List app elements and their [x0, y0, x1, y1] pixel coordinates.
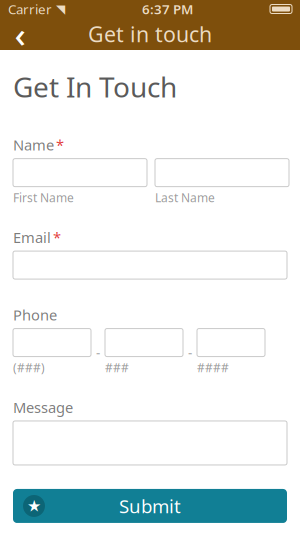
- staticText: Name: [13, 135, 54, 155]
- staticText: Carrier: [8, 0, 52, 18]
- staticText: Phone: [13, 305, 57, 325]
- button[interactable]: Back: [0, 18, 40, 50]
- staticText: First Name: [13, 190, 74, 206]
- button[interactable]: Submit: [13, 489, 287, 523]
- staticText: Get in touch: [88, 20, 212, 48]
- staticText: ####: [197, 360, 229, 375]
- staticText: ‹: [14, 11, 25, 57]
- staticText: Message: [13, 397, 73, 417]
- staticText: -: [188, 343, 192, 361]
- staticText: -: [96, 343, 100, 361]
- staticText: ★: [27, 497, 41, 515]
- staticText: (###): [13, 360, 45, 375]
- staticText: *: [53, 228, 61, 247]
- staticText: Email: [13, 228, 51, 247]
- staticText: 6:37 PM: [142, 0, 193, 18]
- staticText: Get In Touch: [13, 68, 177, 105]
- staticText: ◥: [52, 2, 65, 16]
- staticText: Last Name: [155, 190, 215, 206]
- staticText: Submit: [119, 494, 181, 518]
- staticText: *: [56, 135, 64, 155]
- staticText: ###: [105, 360, 129, 375]
